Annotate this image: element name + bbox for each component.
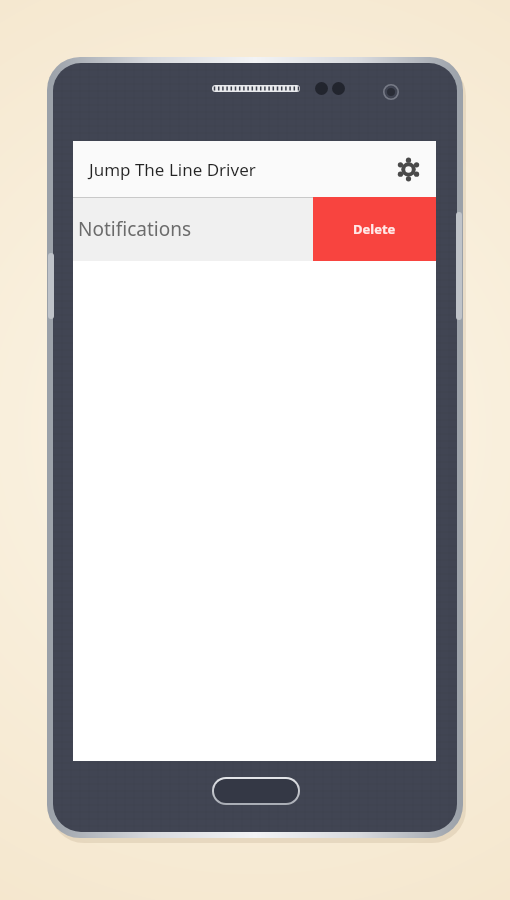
staticText: Delete xyxy=(353,220,396,238)
staticText: Notifications xyxy=(78,216,192,242)
button[interactable]: Home xyxy=(214,779,298,803)
button[interactable]: Delete xyxy=(313,197,436,261)
button[interactable]: Settings xyxy=(388,149,428,189)
staticText: Jump The Line Driver xyxy=(89,158,256,181)
button[interactable]: Notifications xyxy=(73,197,436,261)
